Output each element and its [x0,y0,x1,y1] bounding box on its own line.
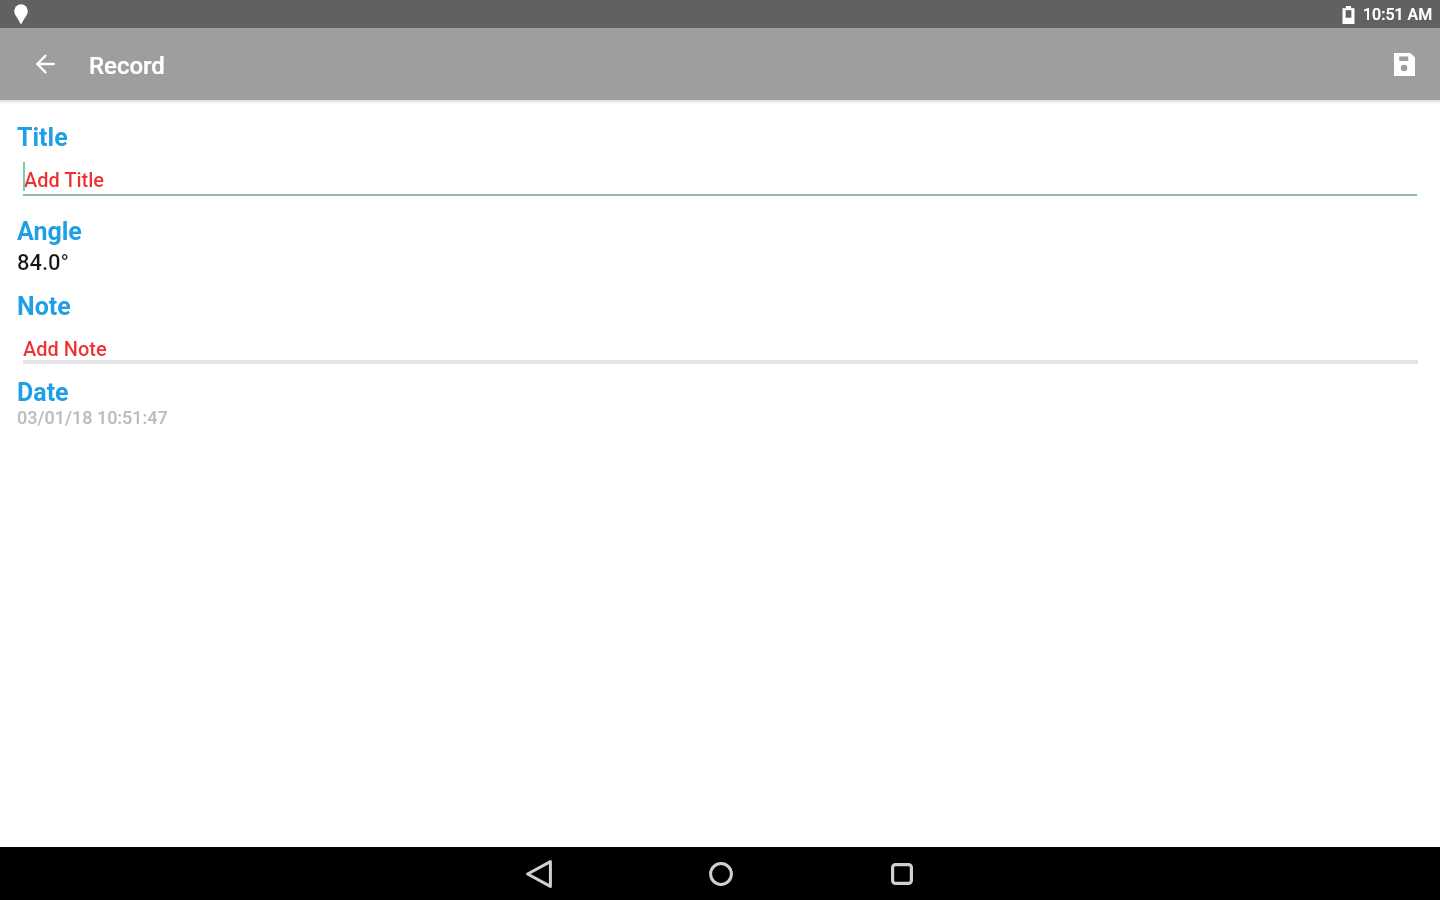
staticText: Add Note [23,337,107,360]
staticText: 03/01/18 10:51:47 [17,407,168,428]
staticText: 84.0° [17,250,70,276]
staticText: Record [89,52,165,80]
button[interactable]: Home [697,850,745,898]
button[interactable]: Add Title [23,158,1418,196]
button[interactable]: Save [1380,40,1428,88]
staticText: Title [17,123,68,152]
staticText: Date [17,378,69,407]
button[interactable]: Add Note [23,328,1418,364]
button[interactable]: Back [515,850,563,898]
staticText: Angle [17,217,82,246]
staticText: 10:51 AM [1363,5,1433,24]
button[interactable]: Navigate up [21,40,69,88]
button[interactable]: Recent apps [878,850,926,898]
staticText: Note [17,292,71,321]
staticText: Add Title [24,168,105,191]
